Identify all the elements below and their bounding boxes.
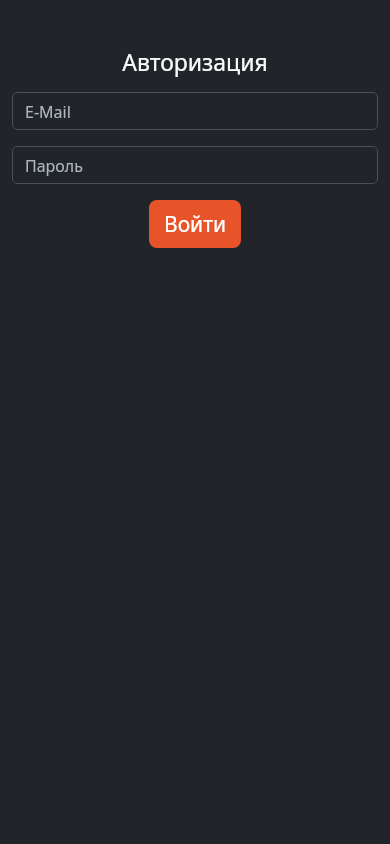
staticText: E-Mail	[25, 101, 71, 123]
button[interactable]: Пароль	[12, 146, 378, 184]
button[interactable]: E-Mail	[12, 92, 378, 130]
button[interactable]: Войти	[149, 200, 241, 248]
staticText: Пароль	[25, 155, 83, 177]
staticText: Авторизация	[0, 46, 390, 77]
staticText: Войти	[164, 210, 226, 239]
